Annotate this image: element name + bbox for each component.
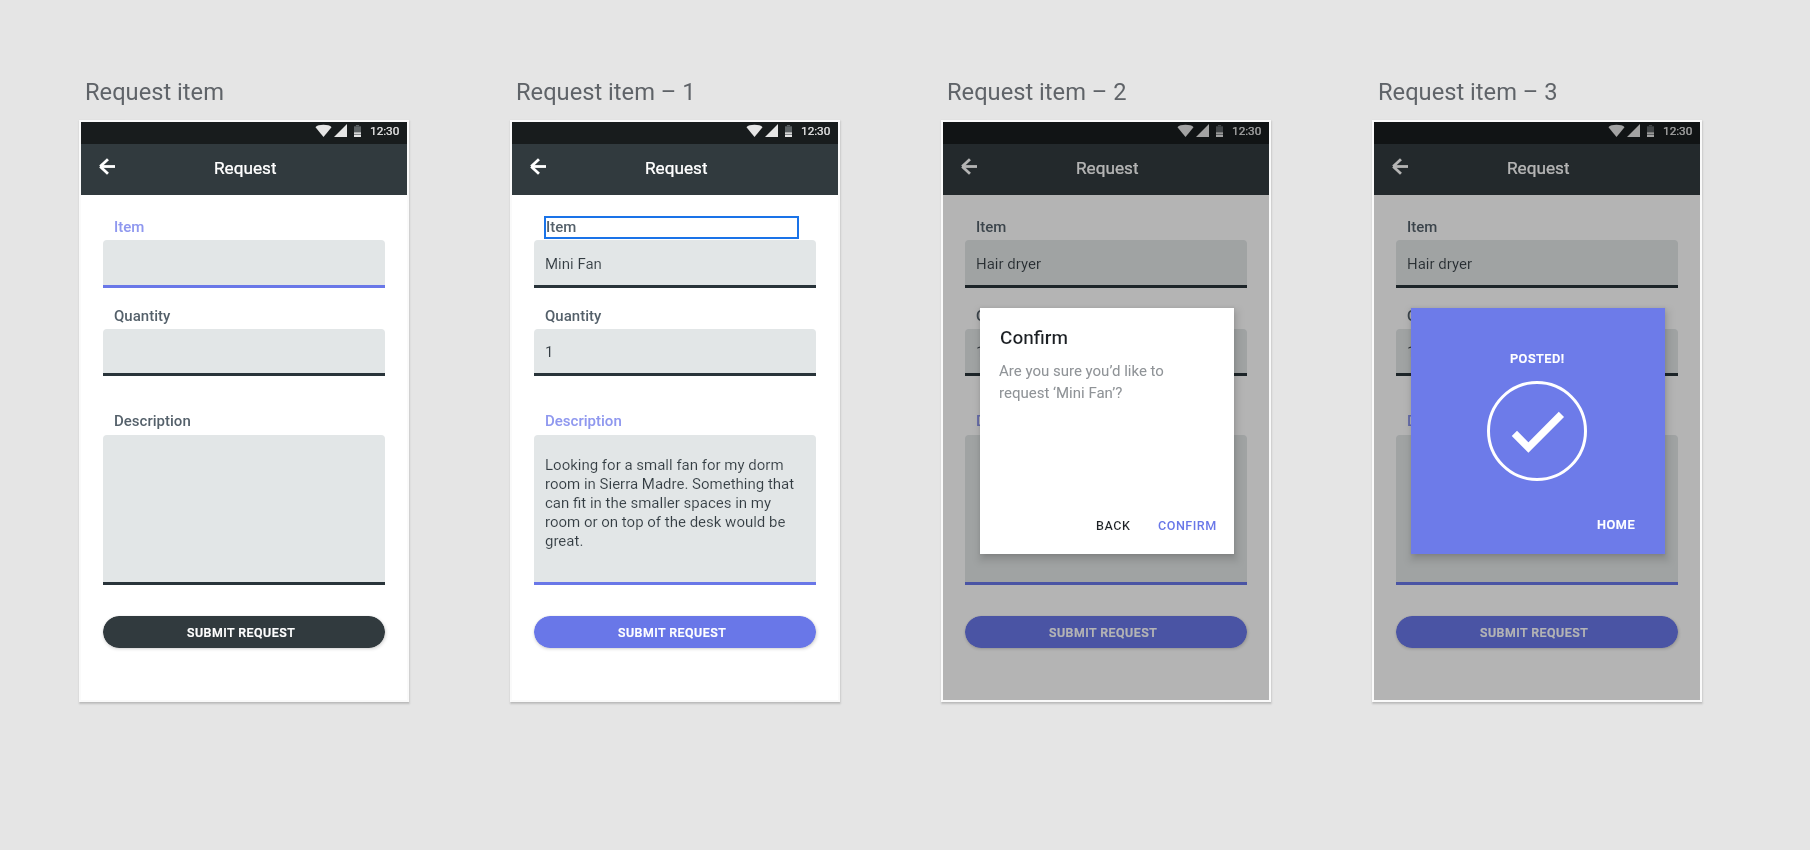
button[interactable]: SUBMIT REQUEST — [1396, 616, 1678, 648]
staticText: Request — [1076, 158, 1139, 178]
button[interactable]: Back — [1383, 153, 1411, 181]
staticText: SUBMIT REQUEST — [1049, 625, 1158, 640]
staticText: Request — [645, 158, 708, 178]
staticText: SUBMIT REQUEST — [187, 625, 296, 640]
staticText: Quantity — [114, 307, 171, 325]
staticText: Confirm — [1000, 326, 1069, 348]
staticText: BACK — [1096, 518, 1131, 533]
staticText: Quantity — [1407, 307, 1464, 325]
staticText: 12:30 — [801, 124, 831, 138]
button[interactable]: SUBMIT REQUEST — [534, 616, 816, 648]
button[interactable]: BACK — [1091, 514, 1136, 537]
staticText: Quantity — [545, 307, 602, 325]
staticText: Request item — [85, 78, 224, 106]
button[interactable]: 1 — [534, 329, 816, 373]
staticText: Description — [976, 412, 1053, 430]
button[interactable]: Mini Fan — [534, 240, 816, 285]
staticText: Description — [1407, 412, 1484, 430]
staticText: Looking for a small fan for my dorm room… — [545, 455, 805, 550]
button[interactable]: SUBMIT REQUEST — [103, 616, 385, 648]
button[interactable]: Back — [521, 153, 549, 181]
staticText: SUBMIT REQUEST — [618, 625, 727, 640]
staticText: Hair dryer — [976, 255, 1042, 273]
staticText: Hair dryer — [1407, 255, 1473, 273]
staticText: Item — [976, 218, 1007, 236]
staticText: Are you sure you’d like to request ‘Mini… — [999, 359, 1175, 403]
staticText: 1 — [976, 343, 985, 361]
staticText: Description — [114, 412, 191, 430]
staticText: 12:30 — [1663, 124, 1693, 138]
button[interactable]: Looking for a small fan for my dorm room… — [534, 435, 816, 582]
staticText: Request — [214, 158, 277, 178]
staticText: HOME — [1597, 517, 1636, 532]
button[interactable]: Back — [90, 153, 118, 181]
button[interactable]: 1 — [965, 329, 1247, 373]
button[interactable]: HOME — [1592, 513, 1641, 536]
staticText: Item — [546, 218, 577, 236]
button[interactable]: 1 — [1396, 329, 1678, 373]
button[interactable]: Hair dryer — [1396, 240, 1678, 285]
staticText: Request item – 1 — [516, 78, 696, 106]
button[interactable]: Back — [952, 153, 980, 181]
staticText: Description — [545, 412, 622, 430]
staticText: Request item – 3 — [1378, 78, 1558, 106]
staticText: Item — [114, 218, 145, 236]
staticText: 1 — [545, 343, 554, 361]
staticText: Quantity — [976, 307, 1033, 325]
staticText: Mini Fan — [545, 255, 602, 273]
staticText: Request — [1507, 158, 1570, 178]
button[interactable]: CONFIRM — [1153, 514, 1222, 537]
button[interactable] — [965, 435, 1247, 582]
staticText: Item — [1407, 218, 1438, 236]
staticText: CONFIRM — [1158, 518, 1217, 533]
staticText: 12:30 — [370, 124, 400, 138]
button[interactable]: Hair dryer — [965, 240, 1247, 285]
staticText: SUBMIT REQUEST — [1480, 625, 1589, 640]
staticText: 1 — [1407, 343, 1416, 361]
button[interactable] — [1396, 435, 1678, 582]
button[interactable]: SUBMIT REQUEST — [965, 616, 1247, 648]
staticText: 12:30 — [1232, 124, 1262, 138]
staticText: Request item – 2 — [947, 78, 1127, 106]
staticText: POSTED! — [1510, 351, 1565, 366]
